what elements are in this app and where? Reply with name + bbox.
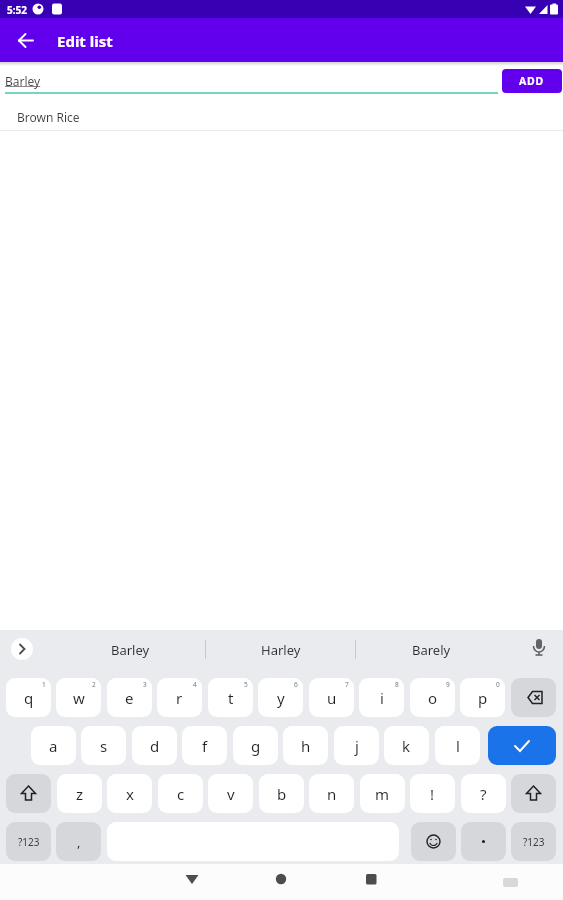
button[interactable]: t xyxy=(208,678,253,717)
button[interactable] xyxy=(6,774,51,813)
staticText: 6 xyxy=(294,680,298,689)
button[interactable]: m xyxy=(360,774,405,813)
button[interactable] xyxy=(488,726,556,765)
staticText: Brown Rice xyxy=(17,109,80,125)
staticText: o xyxy=(428,688,438,708)
staticText: t xyxy=(228,688,234,708)
button[interactable] xyxy=(267,865,295,893)
staticText: Harley xyxy=(261,641,301,659)
staticText: ?123 xyxy=(523,835,545,849)
button[interactable]: Brown Rice xyxy=(0,98,563,130)
button[interactable]: k xyxy=(384,726,429,765)
button[interactable]: ! xyxy=(410,774,455,813)
button[interactable]: v xyxy=(208,774,253,813)
staticText: a xyxy=(49,736,58,756)
button[interactable]: ADD xyxy=(502,69,562,93)
button[interactable] xyxy=(357,865,385,893)
staticText: 9 xyxy=(446,680,450,689)
staticText: ! xyxy=(430,784,435,804)
staticText: v xyxy=(227,784,235,804)
button[interactable]: , xyxy=(56,822,101,861)
staticText: x xyxy=(126,784,134,804)
button[interactable]: u xyxy=(309,678,354,717)
button[interactable]: Harley xyxy=(206,632,355,668)
staticText: Barely xyxy=(412,641,451,659)
button[interactable] xyxy=(411,822,456,861)
staticText: q xyxy=(24,688,34,708)
button[interactable] xyxy=(11,638,33,660)
staticText: m xyxy=(375,784,390,804)
staticText: 1 xyxy=(42,680,46,689)
staticText: r xyxy=(176,688,183,708)
button[interactable]: x xyxy=(107,774,152,813)
staticText: 2 xyxy=(92,680,96,689)
button[interactable] xyxy=(12,26,40,54)
staticText: 8 xyxy=(395,680,399,689)
staticText: Barley xyxy=(5,73,41,89)
staticText: u xyxy=(327,688,337,708)
button[interactable]: a xyxy=(31,726,76,765)
button[interactable]: g xyxy=(233,726,278,765)
button[interactable]: z xyxy=(57,774,102,813)
button[interactable]: ?123 xyxy=(511,822,556,861)
button[interactable]: o xyxy=(410,678,455,717)
staticText: 3 xyxy=(143,680,147,689)
button[interactable]: d xyxy=(132,726,177,765)
staticText: c xyxy=(177,784,185,804)
staticText: p xyxy=(478,688,488,708)
button[interactable] xyxy=(511,678,556,717)
button[interactable]: i xyxy=(359,678,404,717)
button[interactable]: l xyxy=(435,726,480,765)
button[interactable]: ?123 xyxy=(6,822,51,861)
staticText: d xyxy=(150,736,160,756)
staticText: 5:52 xyxy=(7,3,27,17)
button[interactable]: s xyxy=(81,726,126,765)
staticText: 0 xyxy=(496,680,500,689)
button[interactable]: w xyxy=(56,678,101,717)
staticText: l xyxy=(456,736,460,756)
button[interactable]: p xyxy=(460,678,505,717)
staticText: f xyxy=(202,736,208,756)
staticText: z xyxy=(76,784,84,804)
button[interactable]: f xyxy=(182,726,227,765)
staticText: w xyxy=(73,688,85,708)
button[interactable]: r xyxy=(157,678,202,717)
button[interactable]: Barley xyxy=(55,632,205,668)
staticText: Barley xyxy=(111,641,150,659)
staticText: , xyxy=(77,833,81,851)
staticText: s xyxy=(100,736,108,756)
staticText: i xyxy=(380,688,384,708)
staticText: h xyxy=(301,736,311,756)
staticText: 5 xyxy=(244,680,248,689)
staticText: e xyxy=(125,688,134,708)
staticText: b xyxy=(277,784,287,804)
button[interactable] xyxy=(511,774,556,813)
button[interactable]: e xyxy=(107,678,152,717)
staticText: g xyxy=(251,736,261,756)
staticText: j xyxy=(355,736,359,756)
button[interactable]: n xyxy=(309,774,354,813)
button[interactable] xyxy=(178,865,206,893)
button[interactable]: Barely xyxy=(356,632,506,668)
button[interactable]: b xyxy=(259,774,304,813)
button[interactable]: ? xyxy=(461,774,506,813)
button[interactable] xyxy=(528,636,550,658)
staticText: 7 xyxy=(345,680,349,689)
staticText: y xyxy=(277,688,285,708)
button[interactable]: q xyxy=(6,678,51,717)
button[interactable] xyxy=(461,822,506,861)
staticText: ?123 xyxy=(18,835,40,849)
button[interactable]: j xyxy=(334,726,379,765)
staticText: ? xyxy=(480,784,487,804)
button[interactable]: h xyxy=(283,726,328,765)
staticText: 4 xyxy=(193,680,197,689)
button[interactable]: c xyxy=(158,774,203,813)
staticText: ADD xyxy=(519,74,545,88)
button[interactable]: y xyxy=(258,678,303,717)
staticText: n xyxy=(327,784,337,804)
staticText: Edit list xyxy=(57,31,113,51)
staticText: k xyxy=(402,736,411,756)
